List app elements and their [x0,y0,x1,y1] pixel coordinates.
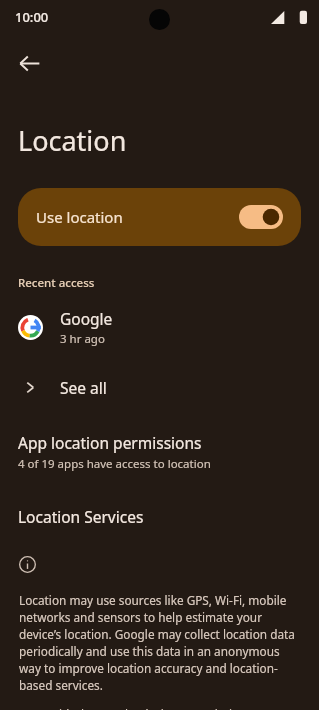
button[interactable]: Use location [18,188,301,246]
staticText: 10:00 [15,8,49,26]
staticText: Apps with the Nearby devices permission … [19,706,300,710]
staticText: Location [18,122,127,159]
button[interactable]: App location permissions [0,430,319,474]
staticText: Recent access [18,275,95,291]
staticText: 3 hr ago [60,331,105,347]
button[interactable]: Google [0,306,319,349]
staticText: 4 of 19 apps have access to location [18,456,211,472]
staticText: App location permissions [18,432,202,453]
button[interactable]: Location Services [0,504,319,529]
staticText: Use location [36,207,239,227]
button[interactable]: Back [6,40,52,86]
staticText: See all [60,377,107,398]
staticText: Location Services [18,506,144,527]
staticText: Google [60,308,113,329]
staticText: Location may use sources like GPS, Wi-Fi… [19,592,300,693]
button[interactable]: See all [0,371,319,404]
